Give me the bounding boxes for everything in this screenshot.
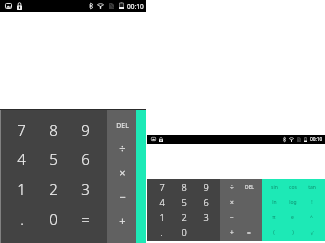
button[interactable]: . bbox=[6, 204, 37, 234]
staticText: sin bbox=[271, 184, 278, 191]
staticText: √ bbox=[310, 230, 314, 236]
button[interactable]: log bbox=[283, 195, 302, 210]
staticText: cos bbox=[289, 184, 297, 191]
staticText: . bbox=[160, 226, 163, 239]
button[interactable]: 5 bbox=[173, 195, 195, 210]
button[interactable]: 3 bbox=[69, 174, 101, 204]
staticText: 8 bbox=[49, 120, 58, 140]
button[interactable]: . bbox=[150, 225, 173, 240]
staticText: ÷ bbox=[119, 141, 126, 156]
staticText: 5 bbox=[49, 149, 58, 169]
staticText: 0 bbox=[181, 226, 187, 239]
staticText: 1 bbox=[17, 179, 26, 199]
staticText: 1 bbox=[159, 211, 165, 224]
button[interactable]: + bbox=[223, 225, 240, 240]
staticText: 7 bbox=[17, 120, 26, 140]
staticText: 3 bbox=[81, 179, 90, 199]
staticText: 9 bbox=[203, 181, 209, 194]
staticText: 4 bbox=[17, 149, 26, 169]
button[interactable]: 2 bbox=[173, 210, 195, 225]
staticText: ( bbox=[273, 229, 275, 236]
button[interactable]: 7 bbox=[6, 115, 37, 144]
button[interactable]: ÷ bbox=[108, 137, 136, 160]
button[interactable]: 8 bbox=[37, 115, 69, 144]
button[interactable]: ) bbox=[283, 225, 302, 240]
staticText: π bbox=[272, 214, 276, 221]
button[interactable]: = bbox=[69, 204, 101, 234]
staticText: × bbox=[230, 198, 234, 207]
button[interactable]: 6 bbox=[69, 144, 101, 174]
staticText: 8 bbox=[181, 181, 187, 194]
button[interactable]: 0 bbox=[37, 204, 69, 234]
staticText: 3 bbox=[203, 211, 209, 224]
button[interactable]: 1 bbox=[6, 174, 37, 204]
button[interactable]: ^ bbox=[302, 210, 321, 225]
button[interactable]: ln bbox=[265, 195, 283, 210]
button[interactable]: − bbox=[223, 210, 240, 225]
button[interactable]: DEL bbox=[108, 114, 136, 137]
button[interactable]: 9 bbox=[69, 115, 101, 144]
staticText: ÷ bbox=[230, 183, 234, 192]
staticText: 7 bbox=[159, 181, 165, 194]
button[interactable]: ! bbox=[302, 195, 321, 210]
button[interactable]: 9 bbox=[195, 180, 217, 195]
button[interactable]: 6 bbox=[195, 195, 217, 210]
staticText: e bbox=[291, 214, 294, 221]
staticText: − bbox=[119, 189, 126, 204]
staticText: . bbox=[20, 209, 24, 229]
button[interactable]: × bbox=[223, 195, 240, 210]
staticText: log bbox=[289, 199, 297, 206]
button[interactable]: 3 bbox=[195, 210, 217, 225]
button[interactable]: tan bbox=[302, 180, 321, 195]
staticText: 00:10 bbox=[310, 136, 323, 143]
staticText: 9 bbox=[81, 120, 90, 140]
button[interactable]: 1 bbox=[150, 210, 173, 225]
button[interactable]: cos bbox=[283, 180, 302, 195]
button[interactable]: DEL bbox=[240, 180, 258, 195]
button[interactable]: sin bbox=[265, 180, 283, 195]
button[interactable]: − bbox=[108, 184, 136, 208]
button[interactable]: ( bbox=[265, 225, 283, 240]
staticText: = bbox=[81, 209, 90, 229]
staticText: DEL bbox=[116, 121, 129, 130]
button[interactable]: 4 bbox=[150, 195, 173, 210]
staticText: + bbox=[119, 213, 126, 228]
staticText: − bbox=[230, 213, 234, 222]
button[interactable]: × bbox=[108, 160, 136, 184]
staticText: 0 bbox=[49, 209, 58, 229]
button[interactable]: 7 bbox=[150, 180, 173, 195]
staticText: 6 bbox=[81, 149, 90, 169]
staticText: 2 bbox=[181, 211, 187, 224]
staticText: 00:10 bbox=[127, 2, 144, 11]
button[interactable]: 5 bbox=[37, 144, 69, 174]
button[interactable]: e bbox=[283, 210, 302, 225]
button[interactable]: π bbox=[265, 210, 283, 225]
staticText: × bbox=[119, 165, 126, 180]
staticText: ! bbox=[311, 199, 313, 206]
button[interactable]: 4 bbox=[6, 144, 37, 174]
staticText: ) bbox=[292, 229, 294, 236]
button[interactable]: ÷ bbox=[223, 180, 240, 195]
button[interactable]: √ bbox=[302, 225, 321, 240]
staticText: 6 bbox=[203, 196, 209, 209]
staticText: 4 bbox=[159, 196, 165, 209]
button[interactable]: = bbox=[240, 225, 258, 240]
button[interactable]: 8 bbox=[173, 180, 195, 195]
staticText: DEL bbox=[245, 184, 254, 191]
staticText: 5 bbox=[181, 196, 187, 209]
button[interactable]: 2 bbox=[37, 174, 69, 204]
button[interactable]: + bbox=[108, 208, 136, 232]
staticText: tan bbox=[308, 184, 316, 191]
staticText: ^ bbox=[310, 214, 313, 221]
staticText: + bbox=[230, 228, 234, 237]
button[interactable]: 0 bbox=[173, 225, 195, 240]
staticText: 2 bbox=[49, 179, 58, 199]
staticText: = bbox=[247, 228, 251, 237]
staticText: ln bbox=[272, 199, 277, 206]
